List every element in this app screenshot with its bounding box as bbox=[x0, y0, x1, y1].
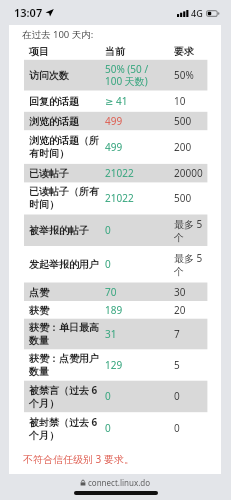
button[interactable] bbox=[24, 215, 207, 247]
staticText: 最多 5 个 bbox=[174, 217, 204, 244]
staticText: 21022 bbox=[105, 166, 134, 180]
staticText: 被举报的帖子 bbox=[29, 224, 89, 237]
staticText: 当前 bbox=[105, 45, 165, 58]
staticText: 被禁言（过去 6 个月） bbox=[29, 383, 102, 410]
staticText: 发起举报的用户 bbox=[29, 258, 99, 271]
staticText: 浏览的话题 bbox=[29, 115, 79, 128]
button[interactable] bbox=[24, 91, 207, 112]
button[interactable] bbox=[24, 349, 207, 380]
staticText: 要求 bbox=[174, 45, 204, 58]
staticText: 30 bbox=[174, 285, 186, 299]
staticText: ≥ 41 bbox=[105, 94, 128, 108]
staticText: 21022 bbox=[105, 191, 134, 205]
staticText: 500 bbox=[174, 191, 192, 205]
staticText: 0 bbox=[174, 389, 180, 403]
staticText: 已读帖子 bbox=[29, 167, 69, 180]
staticText: 0 bbox=[105, 223, 111, 237]
staticText: 浏览的话题（所有时间） bbox=[29, 134, 102, 160]
staticText: 50% bbox=[174, 68, 194, 82]
button[interactable] bbox=[24, 246, 207, 283]
staticText: 10 bbox=[174, 94, 186, 108]
staticText: connect.linux.do bbox=[88, 477, 151, 488]
staticText: 31 bbox=[105, 327, 117, 341]
staticText: 189 bbox=[105, 303, 123, 317]
staticText: 0 bbox=[105, 389, 111, 403]
staticText: 200 bbox=[174, 140, 192, 154]
staticText: 500 bbox=[174, 114, 192, 128]
staticText: 129 bbox=[105, 358, 123, 372]
staticText: 499 bbox=[105, 140, 123, 154]
staticText: 在过去 100 天内: bbox=[22, 28, 94, 41]
staticText: 被封禁（过去 6 个月） bbox=[29, 415, 102, 442]
staticText: 获赞：单日最高数量 bbox=[29, 321, 102, 347]
staticText: 499 bbox=[105, 114, 123, 128]
button[interactable] bbox=[24, 182, 207, 214]
staticText: 最多 5 个 bbox=[174, 251, 204, 278]
staticText: 20 bbox=[174, 303, 186, 317]
staticText: 获赞 bbox=[29, 304, 49, 317]
staticText: 0 bbox=[174, 421, 180, 435]
staticText: 5 bbox=[174, 358, 180, 372]
staticText: 20000 bbox=[174, 166, 203, 180]
button[interactable] bbox=[24, 283, 207, 302]
staticText: 获赞：点赞用户数量 bbox=[29, 352, 102, 378]
staticText: 7 bbox=[174, 327, 180, 341]
button[interactable] bbox=[24, 319, 207, 350]
staticText: 50% (50 / 100 天数) bbox=[105, 62, 165, 88]
staticText: 0 bbox=[105, 421, 111, 435]
staticText: 点赞 bbox=[29, 286, 49, 299]
staticText: 访问次数 bbox=[29, 69, 69, 82]
staticText: 回复的话题 bbox=[29, 95, 79, 108]
staticText: 13:07 bbox=[14, 5, 43, 20]
button[interactable] bbox=[24, 381, 207, 413]
button[interactable] bbox=[24, 301, 207, 319]
staticText: 0 bbox=[105, 257, 111, 271]
button[interactable] bbox=[24, 60, 207, 91]
button[interactable] bbox=[24, 112, 207, 130]
staticText: 不符合信任级别 3 要求。 bbox=[23, 452, 134, 466]
staticText: 70 bbox=[105, 285, 117, 299]
button[interactable] bbox=[24, 412, 207, 444]
staticText: 项目 bbox=[29, 45, 102, 58]
staticText: 4G bbox=[191, 7, 203, 19]
staticText: 已读帖子（所有时间） bbox=[29, 185, 102, 211]
button[interactable] bbox=[24, 130, 207, 164]
button[interactable] bbox=[24, 164, 207, 183]
